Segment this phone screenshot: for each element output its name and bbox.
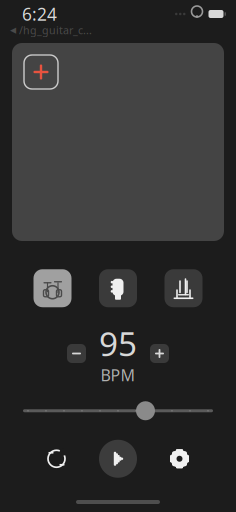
button[interactable]: ◀: [10, 23, 92, 37]
staticText: /hg_guitar_c...: [19, 23, 92, 37]
button[interactable]: Metronome: [164, 269, 202, 307]
button[interactable]: Increase tempo: [150, 344, 169, 363]
button[interactable]: Guitar: [99, 269, 137, 307]
button[interactable]: Settings: [162, 442, 196, 476]
staticText: BPM: [100, 364, 135, 386]
staticText: ◀: [10, 25, 16, 35]
button[interactable]: Loop: [39, 442, 73, 476]
button[interactable]: Play: [99, 440, 137, 478]
staticText: 6:24: [22, 2, 57, 25]
button[interactable]: Add track: [24, 55, 58, 89]
staticText: 95: [99, 321, 137, 365]
button[interactable]: Drums: [33, 269, 71, 307]
button[interactable]: Decrease tempo: [67, 344, 86, 363]
